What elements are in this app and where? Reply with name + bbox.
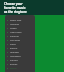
staticText: as the ringtone: [4, 10, 27, 14]
staticText: Moonlight: [10, 55, 21, 58]
staticText: City lights: [10, 39, 21, 42]
button[interactable]: Piano: [5, 42, 35, 46]
staticText: Piano: [10, 43, 16, 46]
button[interactable]: Highway: [5, 50, 35, 54]
button[interactable]: Night drive: [5, 30, 35, 34]
staticText: Ocean: [10, 27, 17, 30]
button[interactable]: Select tone: [5, 18, 35, 22]
button[interactable]: Morning: [5, 22, 35, 26]
staticText: favorite music: [4, 6, 26, 10]
staticText: Sunrise: [10, 59, 18, 62]
staticText: Electric: [10, 47, 18, 50]
staticText: Choose your: [4, 2, 23, 6]
button[interactable]: Ocean: [5, 26, 35, 30]
button[interactable]: See all: [5, 66, 35, 70]
staticText: Morning: [10, 23, 19, 26]
staticText: Select tone: [10, 19, 22, 22]
button[interactable]: Echoes: [5, 62, 35, 66]
button[interactable]: Moonlight: [5, 54, 35, 58]
staticText: Highway: [10, 51, 19, 54]
staticText: See all: [10, 67, 17, 70]
staticText: Night drive: [10, 31, 22, 34]
staticText: Echoes: [10, 63, 18, 66]
button[interactable]: Summer: [5, 34, 35, 38]
staticText: Summer: [10, 35, 19, 38]
button[interactable]: City lights: [5, 38, 35, 42]
button[interactable]: Sunrise: [5, 58, 35, 62]
button[interactable]: Electric: [5, 46, 35, 50]
